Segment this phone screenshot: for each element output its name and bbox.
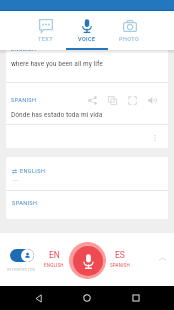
button[interactable]: Record: [73, 246, 103, 276]
staticText: VOICE: [78, 36, 96, 42]
staticText: PHOTO: [119, 36, 140, 42]
button[interactable]: Expand: [155, 252, 169, 266]
staticText: SPANISH: [12, 200, 38, 206]
button[interactable]: PHOTO: [108, 11, 150, 50]
staticText: SPANISH: [11, 97, 37, 103]
staticText: TEXT: [38, 36, 53, 42]
button[interactable]: VOICE: [66, 11, 108, 50]
staticText: ENGLISH: [11, 46, 37, 52]
button[interactable]: Copy: [102, 90, 122, 110]
button[interactable]: ES: [105, 250, 135, 268]
button[interactable]: Home: [76, 287, 98, 309]
staticText: EN: [49, 250, 60, 260]
staticText: ENGLISH: [44, 263, 64, 268]
button[interactable]: Share: [82, 90, 102, 110]
button[interactable]: More options: [148, 131, 162, 145]
button[interactable]: Recents: [125, 287, 147, 309]
staticText: ...: [12, 174, 18, 183]
button[interactable]: Fullscreen: [122, 90, 142, 110]
staticText: where have you been all my life: [11, 59, 103, 68]
staticText: Dónde has estado toda mi vida: [11, 110, 103, 119]
button[interactable]: EN: [39, 250, 69, 268]
button[interactable]: INTERPRETER: [5, 249, 38, 272]
staticText: ENGLISH: [20, 168, 46, 174]
staticText: SPANISH: [110, 263, 130, 268]
button[interactable]: Back: [27, 287, 49, 309]
button[interactable]: TEXT: [24, 11, 66, 50]
staticText: INTERPRETER: [7, 267, 36, 272]
button[interactable]: Listen: [142, 90, 162, 110]
staticText: ES: [115, 250, 125, 260]
